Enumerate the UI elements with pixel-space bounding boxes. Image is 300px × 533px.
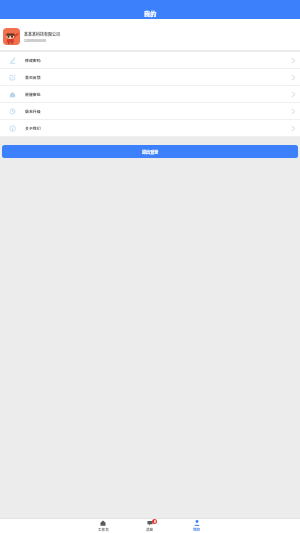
staticText: 房屋审批 [25,91,41,97]
button[interactable]: 0 [126,520,173,532]
staticText: 修改密码 [25,57,41,63]
staticText: 我的 [193,527,201,532]
staticText: 意见反馈 [25,74,41,80]
staticText: 某某某科技有限公司 [24,31,60,37]
staticText: 消息 [146,527,154,532]
staticText: 退出登录 [142,149,159,155]
button[interactable]: 房屋审批 [0,86,300,102]
button[interactable]: 关于我们 [0,120,300,136]
staticText: 工作台 [98,527,109,532]
button[interactable]: 意见反馈 [0,69,300,85]
staticText: 关于我们 [25,125,41,131]
button[interactable]: 修改密码 [0,52,300,68]
staticText: 我的 [144,9,157,18]
button[interactable]: 退出登录 [2,145,298,158]
staticText: 0 [154,520,156,524]
staticText: 13800000000 [24,38,47,43]
staticText: 版本升级 [25,108,41,114]
button[interactable]: 我的 [173,520,220,532]
button[interactable]: 工作台 [80,520,126,532]
button[interactable]: 某某某科技有限公司 [0,19,300,50]
button[interactable]: 版本升级 [0,103,300,119]
